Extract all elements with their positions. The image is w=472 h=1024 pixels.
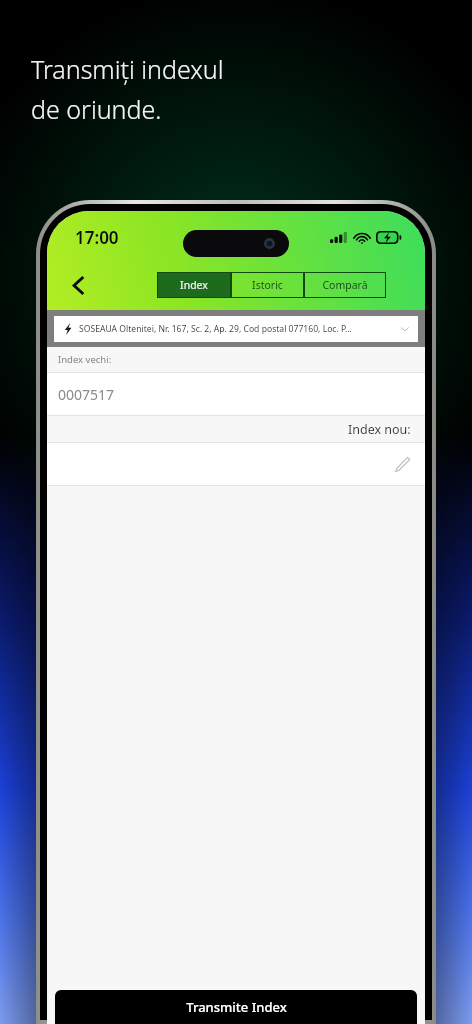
staticText: 0007517: [58, 385, 115, 404]
staticText: Index nou:: [348, 421, 411, 438]
button[interactable]: Transmite Index: [55, 990, 417, 1024]
staticText: Transmite Index: [186, 998, 287, 1016]
button[interactable]: Compară: [304, 272, 386, 298]
staticText: Transmiți indexul: [31, 52, 224, 86]
staticText: Istoric: [252, 278, 283, 292]
button[interactable]: Istoric: [231, 272, 304, 298]
staticText: Index: [180, 278, 208, 292]
staticText: Index vechi:: [58, 353, 112, 366]
button[interactable]: Înapoi: [57, 264, 99, 306]
button[interactable]: Index: [157, 272, 231, 298]
button[interactable]: SOSEAUA Oltenitei, Nr. 167, Sc. 2, Ap. 2…: [54, 316, 418, 342]
staticText: de oriunde.: [31, 92, 162, 126]
staticText: SOSEAUA Oltenitei, Nr. 167, Sc. 2, Ap. 2…: [79, 323, 400, 335]
staticText: 17:00: [75, 226, 119, 249]
staticText: Compară: [322, 278, 368, 292]
button[interactable]: Editează index nou: [47, 443, 425, 485]
